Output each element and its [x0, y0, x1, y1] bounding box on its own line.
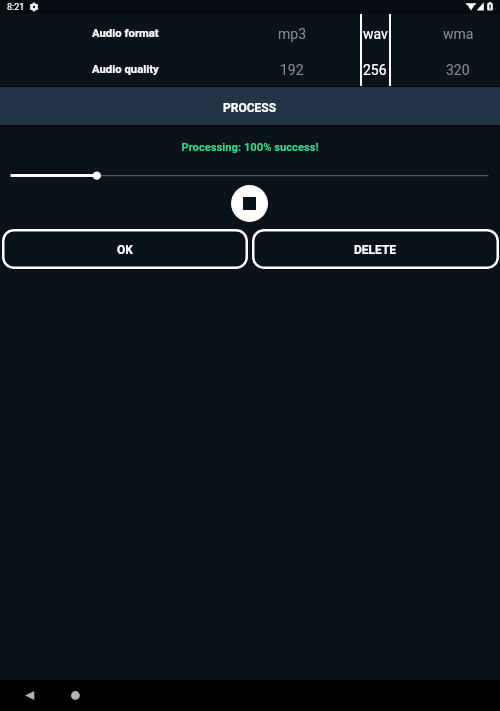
button[interactable]: Audio quality: [80, 51, 250, 88]
button[interactable]: wma: [418, 15, 498, 52]
staticText: mp3: [278, 26, 307, 42]
staticText: Audio format: [92, 27, 159, 40]
button[interactable]: Stop: [231, 185, 268, 222]
button[interactable]: 256: [335, 51, 415, 88]
button[interactable]: mp3: [252, 15, 332, 52]
button[interactable]: 320: [418, 51, 498, 88]
button[interactable]: PROCESS: [0, 87, 500, 125]
button[interactable]: wav: [335, 15, 415, 52]
staticText: 256: [363, 62, 387, 78]
button[interactable]: Progress slider: [0, 166, 500, 186]
button[interactable]: 192: [252, 51, 332, 88]
staticText: 320: [446, 62, 470, 78]
button[interactable]: Home: [60, 680, 90, 711]
button[interactable]: DELETE: [252, 229, 499, 269]
staticText: OK: [117, 243, 133, 257]
staticText: wav: [363, 26, 388, 42]
staticText: Audio quality: [92, 63, 159, 76]
button[interactable]: OK: [2, 229, 248, 269]
staticText: DELETE: [354, 243, 397, 257]
staticText: Processing: 100% success!: [181, 141, 319, 154]
staticText: wma: [443, 26, 474, 42]
staticText: 8:21: [7, 2, 25, 13]
button[interactable]: Back: [15, 680, 45, 711]
staticText: 192: [280, 62, 304, 78]
button[interactable]: Audio format: [80, 15, 250, 52]
staticText: PROCESS: [223, 101, 277, 115]
